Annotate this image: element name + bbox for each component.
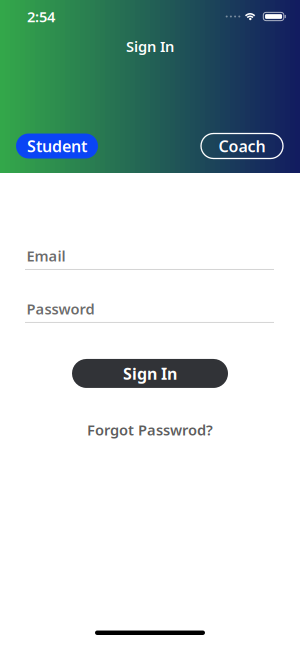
staticText: 2:54: [27, 7, 55, 26]
staticText: Sign In: [123, 363, 177, 384]
button[interactable]: Sign In: [72, 359, 228, 388]
staticText: Sign In: [126, 36, 174, 56]
staticText: Student: [27, 135, 87, 157]
button[interactable]: Coach: [201, 133, 283, 158]
button[interactable]: Student: [16, 133, 98, 158]
staticText: Coach: [218, 135, 265, 157]
staticText: Forgot Passwrod?: [87, 420, 213, 439]
button[interactable]: Forgot Passwrod?: [87, 420, 213, 439]
staticText: Email: [26, 246, 65, 265]
staticText: Password: [26, 299, 94, 318]
